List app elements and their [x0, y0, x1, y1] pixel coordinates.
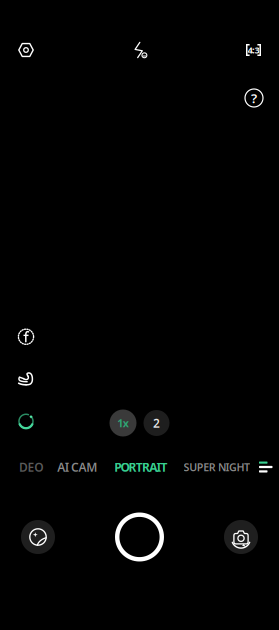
button[interactable]: Shutter	[112, 510, 166, 564]
staticText: 1x	[117, 416, 129, 430]
button[interactable]: 1x	[109, 409, 136, 436]
button[interactable]: Flash off	[131, 41, 148, 59]
staticText: PORTRAIT	[114, 459, 168, 475]
button[interactable]: DEO	[19, 459, 43, 475]
staticText: 2	[153, 415, 160, 431]
button[interactable]: Pro mode	[18, 43, 34, 57]
staticText: 4:3	[248, 44, 259, 56]
button[interactable]: PORTRAIT	[114, 459, 168, 475]
button[interactable]: Beauty level	[17, 371, 34, 387]
button[interactable]: Aspect ratio 4 by 3	[246, 44, 261, 56]
staticText: ?	[251, 89, 257, 107]
button[interactable]: More modes	[259, 461, 273, 472]
button[interactable]: 2	[143, 410, 169, 436]
button[interactable]: Portrait lighting	[18, 413, 34, 430]
button[interactable]: Filters	[20, 519, 56, 555]
button[interactable]: SUPER NIGHT	[184, 460, 250, 474]
staticText: DEO	[19, 459, 43, 475]
button[interactable]: Switch camera	[223, 519, 259, 555]
staticText: AI CAM	[57, 459, 97, 475]
button[interactable]: Aperture	[17, 328, 34, 345]
button[interactable]: Help	[244, 88, 264, 108]
staticText: SUPER NIGHT	[184, 460, 250, 474]
button[interactable]: AI CAM	[57, 459, 97, 475]
